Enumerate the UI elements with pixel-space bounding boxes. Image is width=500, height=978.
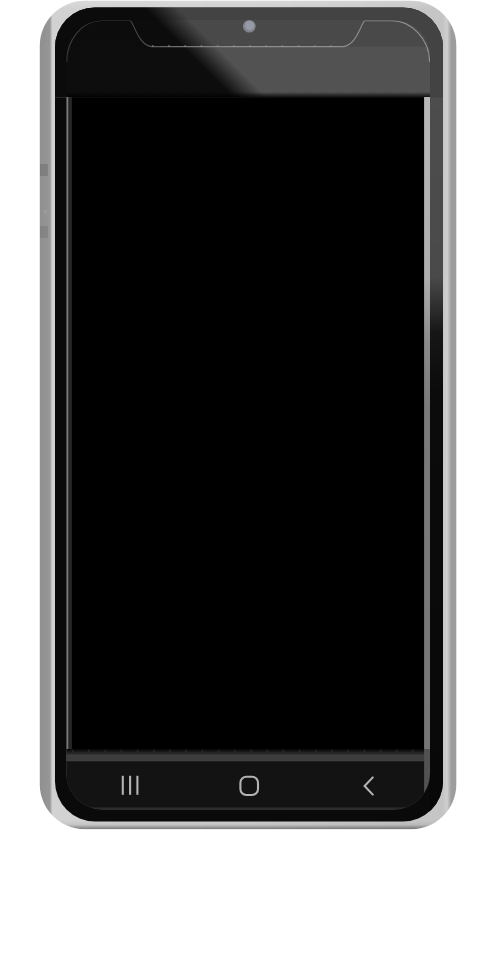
button[interactable]: Recent apps — [90, 762, 170, 808]
button[interactable]: Back — [328, 762, 408, 808]
button[interactable]: Home — [209, 762, 289, 808]
